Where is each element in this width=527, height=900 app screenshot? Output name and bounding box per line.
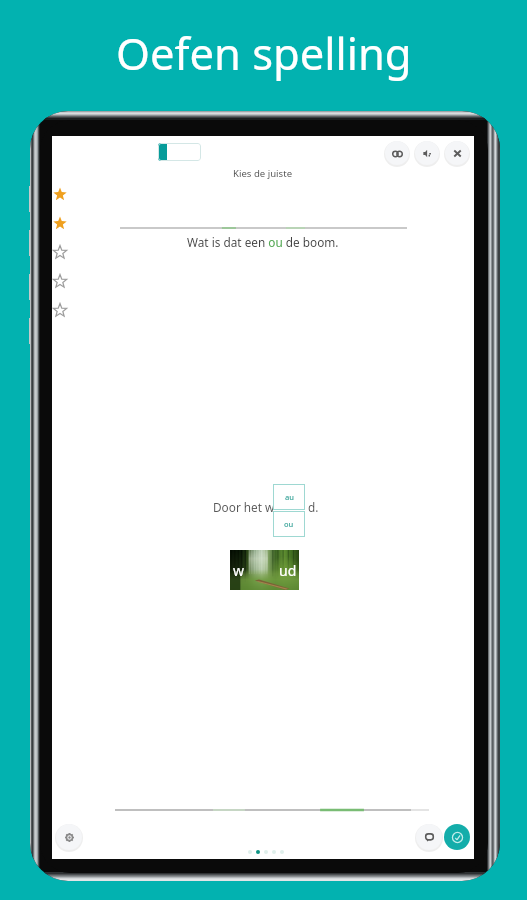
staticText: au bbox=[285, 492, 294, 502]
button[interactable]: Sound bbox=[415, 141, 439, 165]
button[interactable]: Check answer bbox=[444, 824, 470, 850]
button[interactable]: Close bbox=[445, 141, 469, 165]
button[interactable]: ou bbox=[273, 511, 305, 537]
button[interactable]: Hint bbox=[385, 141, 409, 165]
staticText: Oefen spelling bbox=[116, 23, 412, 82]
staticText: Kies de juiste bbox=[233, 167, 293, 180]
staticText: Door het w bbox=[213, 499, 275, 515]
staticText: d. bbox=[308, 499, 319, 515]
button[interactable]: au bbox=[273, 484, 305, 510]
staticText: Wat is dat een ou de boom. bbox=[187, 234, 339, 250]
staticText: w bbox=[233, 561, 245, 580]
staticText: ou bbox=[284, 519, 294, 529]
button[interactable]: Settings bbox=[56, 824, 82, 850]
button[interactable]: Feedback bbox=[416, 824, 442, 850]
staticText: ud bbox=[279, 561, 297, 580]
